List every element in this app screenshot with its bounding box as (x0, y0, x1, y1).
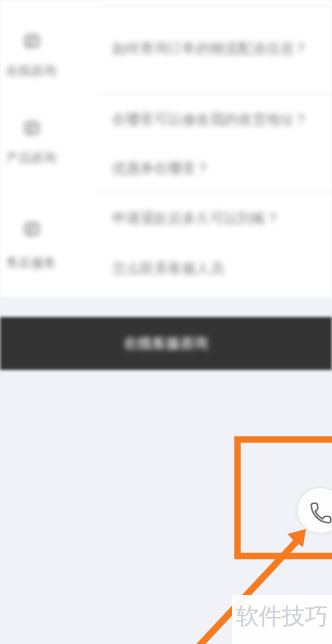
staticText: 优惠券在哪里？ (112, 160, 210, 178)
button[interactable]: 在线咨询 (0, 28, 66, 87)
staticText: 在线客服咨询 (124, 335, 208, 353)
staticText: 怎么联系客服人员 (112, 260, 224, 278)
staticText: 如何查询订单的物流配送信息？ (112, 40, 308, 58)
staticText: 申请退款后多久可以到账？ (112, 210, 280, 228)
staticText: 在线咨询 (6, 63, 56, 79)
button[interactable]: 售后服务 (0, 216, 66, 279)
staticText: 售后服务 (6, 255, 56, 271)
staticText: 产品咨询 (6, 150, 56, 166)
button[interactable]: 在线客服咨询 (0, 317, 332, 370)
button[interactable]: 产品咨询 (0, 115, 66, 174)
staticText: 软件技巧 (236, 602, 328, 631)
staticText: 在哪里可以修改我的收货地址？ (112, 111, 308, 129)
button[interactable]: Call (298, 488, 332, 533)
